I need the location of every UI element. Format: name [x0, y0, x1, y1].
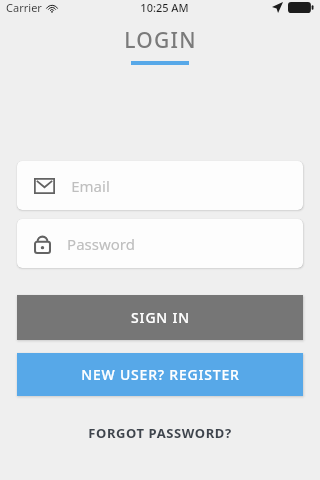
- button[interactable]: Email: [17, 161, 303, 210]
- staticText: FORGOT PASSWORD?: [88, 424, 232, 442]
- button[interactable]: Password: [17, 219, 303, 268]
- other: Password: [34, 233, 51, 254]
- staticText: Carrier: [6, 0, 42, 15]
- button[interactable]: NEW USER? REGISTER: [17, 353, 303, 396]
- other: Email: [34, 178, 55, 194]
- staticText: 10:25 AM: [140, 0, 189, 15]
- staticText: NEW USER? REGISTER: [81, 365, 240, 384]
- button[interactable]: FORGOT PASSWORD?: [0, 418, 320, 448]
- staticText: SIGN IN: [131, 308, 190, 327]
- button[interactable]: SIGN IN: [17, 295, 303, 340]
- staticText: Email: [71, 176, 110, 196]
- staticText: LOGIN: [124, 26, 197, 55]
- staticText: Password: [67, 234, 135, 254]
